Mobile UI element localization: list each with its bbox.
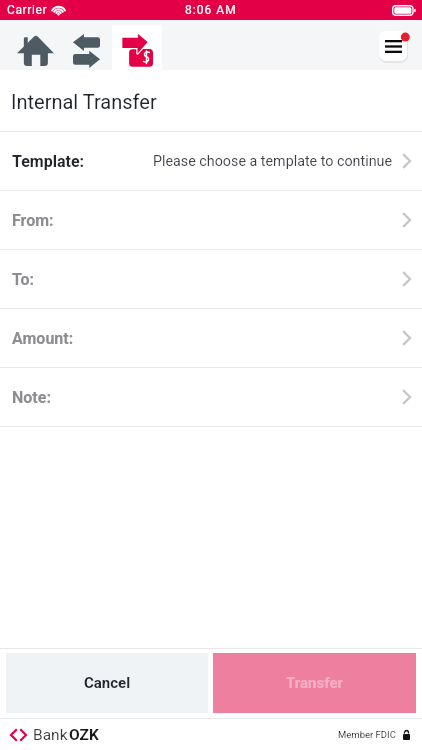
staticText: OZK [69, 726, 99, 744]
staticText: Amount: [12, 329, 74, 348]
staticText: Transfer [286, 674, 343, 692]
staticText: Internal Transfer [11, 90, 157, 113]
staticText: 8:06 AM [185, 3, 237, 17]
staticText: Bank [33, 726, 68, 744]
staticText: Template: [12, 152, 85, 171]
button[interactable]: To: [0, 250, 422, 308]
staticText: Note: [12, 388, 51, 407]
button[interactable]: Note: [0, 368, 422, 426]
staticText: To: [12, 270, 35, 289]
staticText: From: [12, 211, 54, 230]
button[interactable]: Cancel [6, 653, 208, 713]
staticText: Please choose a template to continue [153, 153, 393, 170]
button[interactable]: Amount: [0, 309, 422, 367]
button[interactable]: Home [7, 25, 64, 66]
staticText: Carrier [7, 3, 48, 17]
staticText: Member FDIC [338, 729, 396, 740]
button[interactable]: Menu [373, 25, 415, 69]
button[interactable]: Internal Transfer [112, 25, 162, 70]
button[interactable]: Transfer [213, 653, 416, 713]
button[interactable]: Internal Transfer icon [122, 34, 153, 67]
button[interactable]: Template: [0, 132, 422, 190]
staticText: Cancel [84, 674, 131, 692]
button[interactable]: Transfers [63, 24, 110, 68]
button[interactable]: From: [0, 191, 422, 249]
